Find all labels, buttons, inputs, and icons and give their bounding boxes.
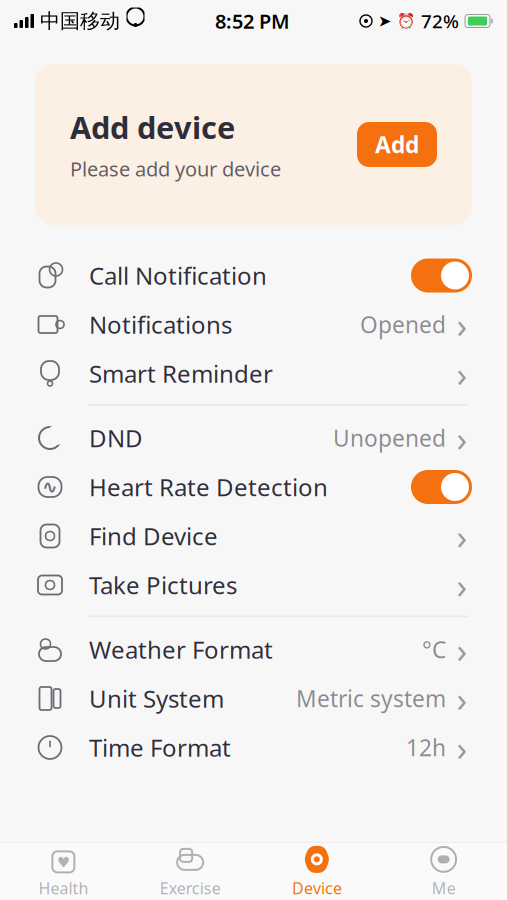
staticText: ⏰	[397, 13, 415, 29]
staticText: ›	[456, 675, 467, 721]
staticText: ›	[456, 626, 467, 672]
staticText: ›	[456, 513, 467, 559]
staticText: Device	[292, 877, 342, 899]
button[interactable]: Time Format	[35, 723, 472, 772]
staticText: Heart Rate Detection	[89, 471, 328, 503]
staticText: Exercise	[160, 877, 221, 899]
staticText: Health	[38, 877, 88, 899]
button[interactable]: Me	[380, 843, 507, 900]
button[interactable]: Take Pictures	[35, 560, 472, 609]
staticText: Weather Format	[89, 634, 273, 665]
staticText: Opened	[360, 309, 446, 339]
staticText: ›	[456, 415, 467, 461]
staticText: Me	[432, 877, 456, 899]
staticText: DND	[89, 422, 143, 454]
button[interactable]: Add	[357, 122, 437, 167]
staticText: ›	[456, 562, 467, 608]
staticText: Add	[375, 129, 419, 159]
staticText: ›	[456, 301, 467, 347]
staticText: 8:52 PM	[215, 8, 290, 34]
button[interactable]: Notifications	[35, 300, 472, 349]
button[interactable]: Call Notification	[35, 251, 472, 300]
staticText: 12h	[406, 732, 446, 762]
staticText: Time Format	[89, 732, 231, 763]
button[interactable]: Exercise	[127, 843, 254, 900]
button[interactable]: Smart Reminder	[35, 349, 472, 398]
staticText: ∿	[42, 476, 58, 498]
staticText: Unopened	[333, 423, 446, 453]
staticText: ♥	[57, 854, 70, 871]
button[interactable]: Unit System	[35, 674, 472, 723]
button[interactable]: Device	[253, 843, 380, 900]
staticText: Unit System	[89, 683, 224, 714]
staticText: ➤	[378, 12, 391, 30]
staticText: Take Pictures	[89, 569, 237, 601]
staticText: Metric system	[296, 683, 446, 713]
button[interactable]: DND	[35, 413, 472, 462]
staticText: Add device	[70, 107, 235, 148]
staticText: Smart Reminder	[89, 358, 273, 389]
staticText: 中国移动	[40, 9, 120, 33]
button[interactable]: ♥	[0, 843, 127, 900]
staticText: ›	[456, 724, 467, 770]
button[interactable]: Weather Format	[35, 625, 472, 674]
button[interactable]: ∿	[35, 462, 472, 511]
staticText: °C	[422, 634, 446, 664]
staticText: Notifications	[89, 309, 232, 340]
staticText: Please add your device	[70, 156, 281, 182]
staticText: ›	[456, 350, 467, 396]
button[interactable]: Find Device	[35, 511, 472, 560]
staticText: Call Notification	[89, 260, 267, 291]
staticText: Find Device	[89, 520, 218, 552]
staticText: 72%	[421, 9, 459, 33]
